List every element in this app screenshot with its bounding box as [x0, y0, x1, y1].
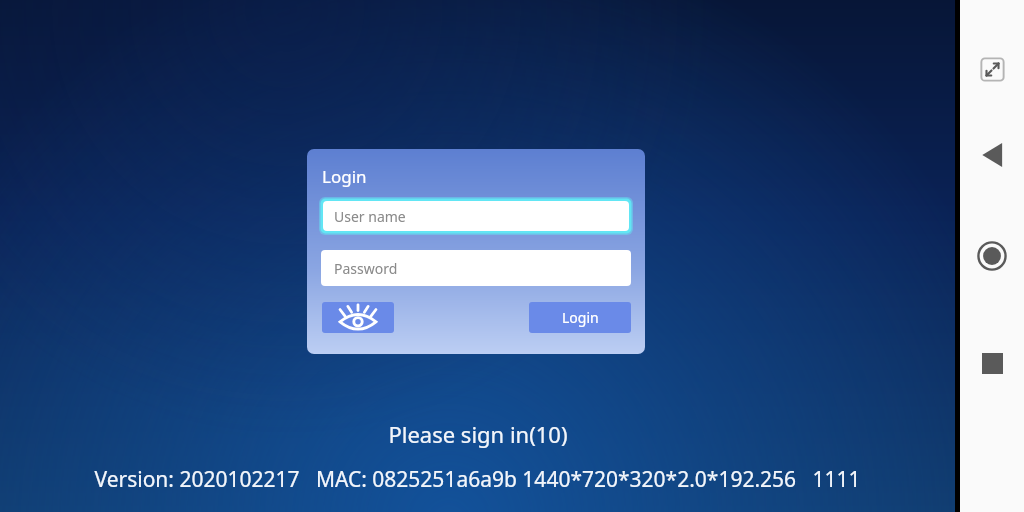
button[interactable]: Back: [969, 132, 1015, 178]
staticText: Password: [334, 259, 398, 278]
staticText: Please sign in(10): [388, 419, 568, 449]
staticText: Login: [322, 165, 367, 188]
button[interactable]: Login: [529, 302, 631, 333]
button[interactable]: User name: [319, 197, 633, 235]
button[interactable]: Home: [969, 233, 1015, 279]
staticText: Version: 2020102217 MAC: 0825251a6a9b 14…: [94, 465, 861, 494]
button[interactable]: Recent apps: [969, 340, 1015, 386]
staticText: Login: [562, 308, 599, 327]
button[interactable]: Fullscreen: [969, 46, 1015, 92]
button[interactable]: Password: [321, 250, 631, 286]
button[interactable]: Show password: [322, 302, 394, 333]
staticText: User name: [334, 207, 406, 226]
